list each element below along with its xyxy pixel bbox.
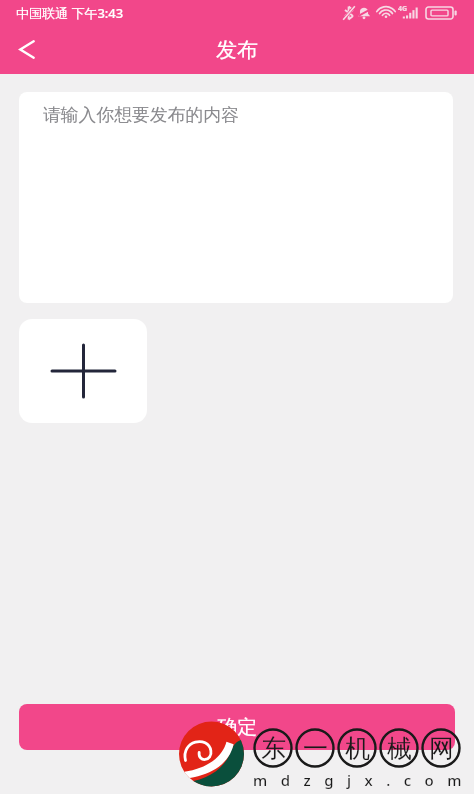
staticText: 一 xyxy=(303,733,328,764)
staticText: 4G xyxy=(398,4,408,14)
button[interactable]: Add photo xyxy=(19,319,147,423)
button[interactable]: 确定 xyxy=(19,704,455,750)
staticText: 东 xyxy=(261,733,286,764)
button[interactable]: Back xyxy=(0,25,54,73)
staticText: 中国联通 下午3:43 xyxy=(16,4,124,22)
staticText: 确定 xyxy=(217,715,257,740)
staticText: mdzgjx.com xyxy=(253,770,474,790)
button[interactable]: 请输入你想要发布的内容 xyxy=(19,92,453,303)
staticText: 请输入你想要发布的内容 xyxy=(43,104,239,126)
staticText: 械 xyxy=(387,733,412,764)
staticText: 发布 xyxy=(216,37,258,63)
staticText: 网 xyxy=(429,733,454,764)
staticText: 机 xyxy=(345,733,370,764)
